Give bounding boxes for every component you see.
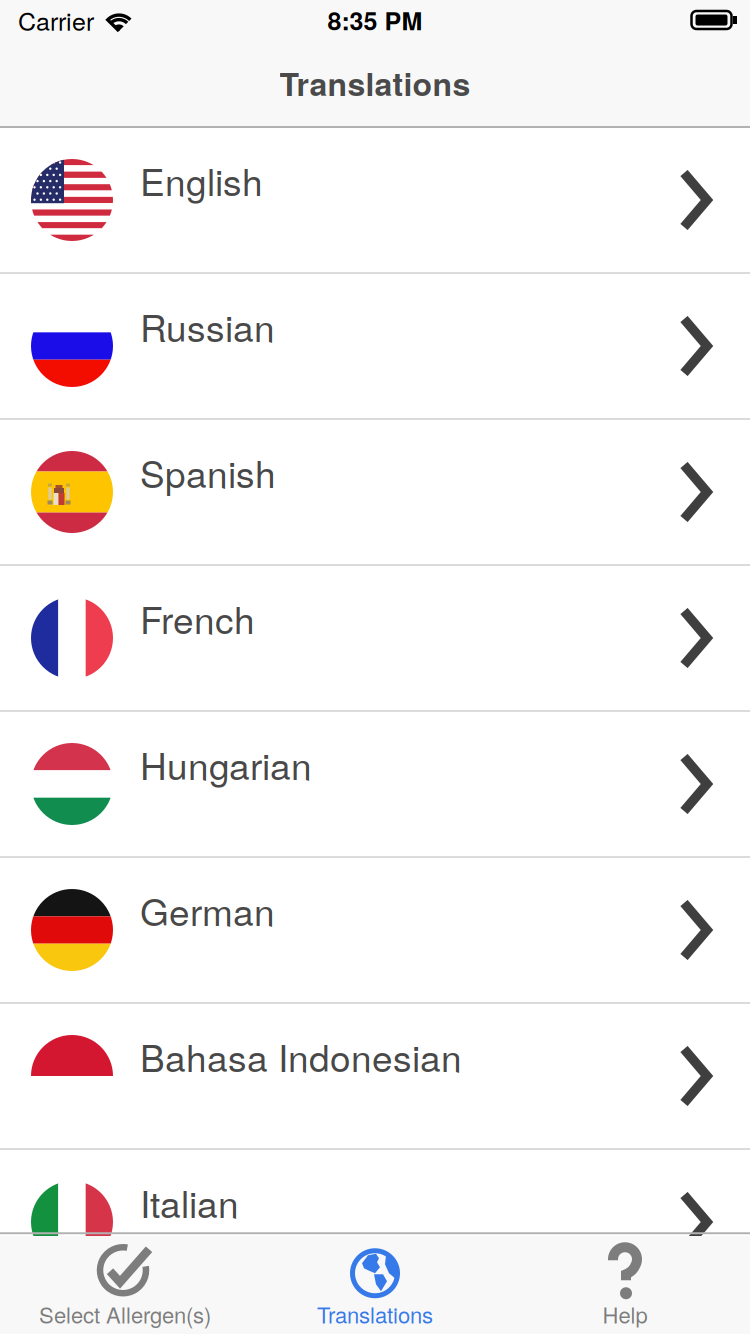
staticText: Hungarian [140, 737, 312, 790]
staticText: Italian [140, 1175, 239, 1228]
staticText: Russian [140, 299, 275, 352]
button[interactable]: English [0, 128, 750, 274]
button[interactable]: Italian [0, 1150, 750, 1296]
staticText: English [140, 153, 263, 206]
button[interactable]: Spanish [0, 420, 750, 566]
staticText: Bahasa Indonesian [140, 1029, 462, 1082]
button[interactable]: French [0, 566, 750, 712]
staticText: Spanish [140, 445, 276, 498]
staticText: Translations [317, 1298, 433, 1330]
button[interactable]: Hungarian [0, 712, 750, 858]
staticText: Translations [279, 60, 470, 106]
button[interactable]: Russian [0, 274, 750, 420]
staticText: German [140, 883, 275, 936]
button[interactable]: Help [500, 1234, 750, 1330]
staticText: Help [602, 1298, 647, 1330]
staticText: Carrier [18, 2, 94, 38]
staticText: 8:35 PM [327, 2, 422, 38]
staticText: Select Allergen(s) [39, 1298, 211, 1330]
button[interactable]: German [0, 858, 750, 1004]
button[interactable]: Bahasa Indonesian [0, 1004, 750, 1150]
staticText: French [140, 591, 255, 644]
button[interactable]: Select Allergen(s) [0, 1234, 250, 1330]
button[interactable]: Translations [250, 1234, 500, 1330]
